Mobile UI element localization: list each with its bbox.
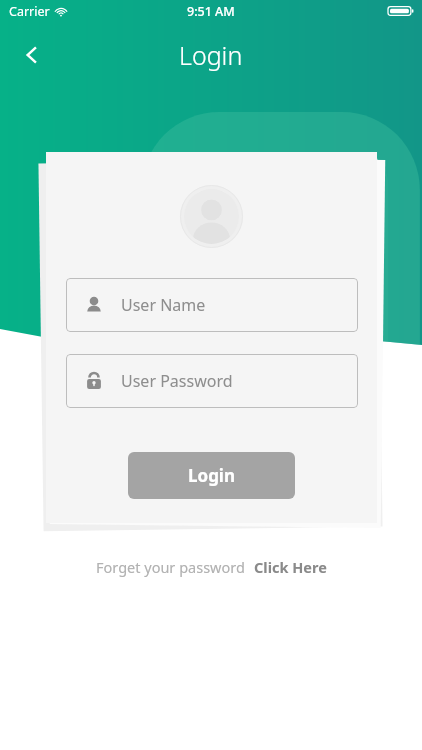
button[interactable]: User Name: [66, 278, 358, 332]
staticText: User Password: [121, 370, 233, 392]
staticText: Click Here: [254, 557, 327, 577]
staticText: Carrier: [9, 3, 50, 20]
staticText: Login: [188, 464, 236, 487]
staticText: Login: [179, 38, 243, 72]
staticText: Forget your password: [96, 557, 245, 577]
button[interactable]: Back: [10, 33, 54, 77]
staticText: User Name: [121, 294, 206, 316]
button[interactable]: Click Here: [254, 557, 327, 577]
button[interactable]: Login: [128, 452, 295, 499]
staticText: 9:51 AM: [187, 3, 235, 20]
button[interactable]: User Password: [66, 354, 358, 408]
